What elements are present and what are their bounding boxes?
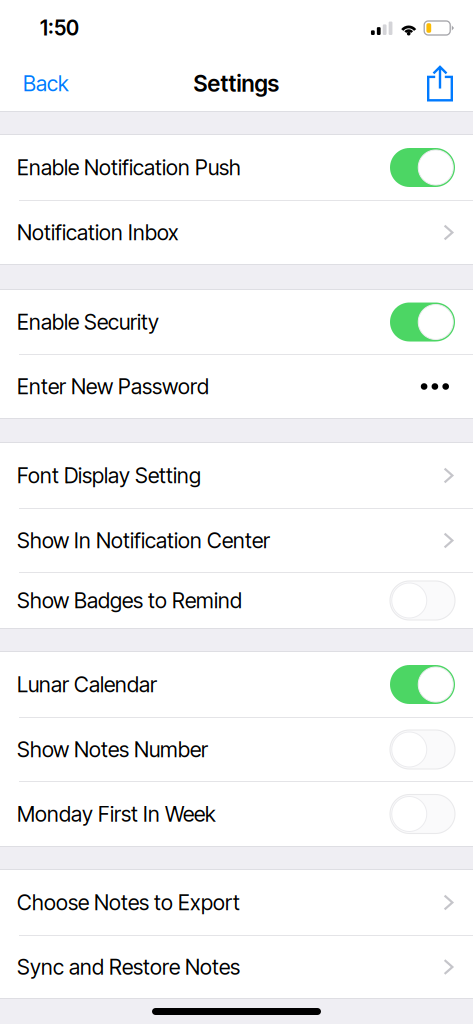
staticText: Monday First In Week (17, 801, 216, 827)
button[interactable]: Show In Notification Center (0, 509, 473, 572)
staticText: Notification Inbox (17, 220, 179, 245)
button[interactable]: Share (413, 56, 473, 111)
button[interactable]: Choose Notes to Export (0, 870, 473, 935)
staticText: Show Badges to Remind (17, 588, 242, 613)
button[interactable]: Enable Notification Push (0, 135, 473, 200)
staticText: Show Notes Number (17, 737, 208, 762)
button[interactable]: Enable Security (0, 290, 473, 354)
button[interactable]: Show Badges to Remind (0, 573, 473, 628)
button[interactable]: Notification Inbox (0, 201, 473, 264)
staticText: Lunar Calendar (17, 672, 157, 697)
button[interactable]: Font Display Setting (0, 443, 473, 508)
button[interactable]: Back (0, 56, 83, 111)
staticText: Enable Security (17, 309, 159, 335)
staticText: Settings (193, 70, 279, 97)
staticText: Back (23, 71, 69, 96)
staticText: Choose Notes to Export (17, 890, 240, 915)
staticText: 1:50 (40, 15, 79, 40)
staticText: Enter New Password (17, 374, 209, 399)
button[interactable]: Monday First In Week (0, 782, 473, 846)
button[interactable]: Sync and Restore Notes (0, 936, 473, 998)
staticText: Sync and Restore Notes (17, 954, 240, 980)
staticText: Show In Notification Center (17, 528, 270, 553)
button[interactable]: Lunar Calendar (0, 652, 473, 717)
button[interactable]: Enter New Password (0, 355, 473, 418)
staticText: Enable Notification Push (17, 155, 241, 180)
button[interactable]: Show Notes Number (0, 718, 473, 781)
staticText: Font Display Setting (17, 463, 201, 488)
